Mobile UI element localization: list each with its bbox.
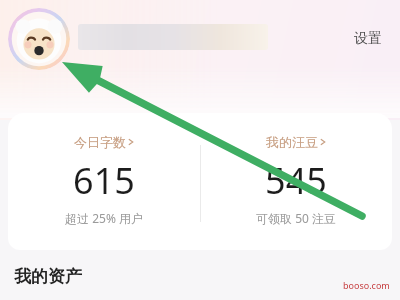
staticText: 可领取 50 注豆: [256, 210, 336, 226]
staticText: 615: [73, 156, 135, 205]
staticText: 我的汪豆: [266, 134, 318, 150]
staticText: 设置: [354, 30, 382, 48]
button[interactable]: 我的资产: [12, 264, 84, 289]
staticText: 超过 25% 用户: [65, 210, 143, 226]
staticText: 545: [265, 156, 327, 205]
staticText: booso.com: [343, 279, 390, 291]
staticText: 我的资产: [14, 266, 82, 287]
button[interactable]: 设置: [352, 28, 384, 50]
button[interactable]: 我的汪豆: [200, 113, 392, 250]
staticText: 今日字数: [74, 134, 126, 150]
button[interactable]: 今日字数: [8, 113, 200, 250]
button[interactable]: Profile avatar: [8, 8, 70, 70]
